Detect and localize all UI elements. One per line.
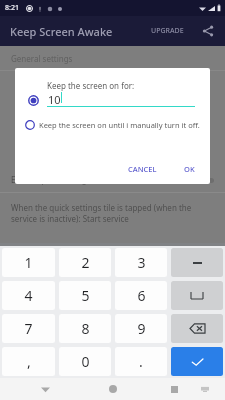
staticText: UPGRADE [151, 26, 184, 36]
button[interactable]: 2 [59, 248, 111, 277]
staticText: 6 [137, 286, 146, 305]
staticText: 5 [81, 286, 90, 305]
button[interactable]: Enter [171, 347, 223, 376]
button[interactable]: 6 [115, 281, 167, 310]
staticText: 0 [81, 352, 90, 371]
button[interactable]: 0 [59, 347, 111, 376]
staticText: When the quick settings tile is tapped (… [11, 202, 214, 224]
staticText: 2 [81, 253, 90, 272]
button[interactable]: Recents [165, 380, 183, 398]
button[interactable]: OK [177, 159, 202, 179]
staticText: Enable quick settings tile [11, 174, 196, 185]
button[interactable]: Keep screen on for duration [23, 90, 43, 110]
staticText: 4 [24, 286, 33, 305]
staticText: 10 [48, 92, 61, 107]
button[interactable]: Backspace [171, 314, 223, 343]
button[interactable]: , [2, 347, 55, 376]
button[interactable]: 5 [59, 281, 111, 310]
staticText: 8 [81, 319, 90, 338]
button[interactable]: CANCEL [121, 159, 164, 179]
button[interactable]: Dash [171, 248, 223, 277]
staticText: , [27, 352, 31, 371]
staticText: 3 [137, 253, 146, 272]
staticText: Keep Screen Awake [10, 24, 113, 39]
staticText: 8:21 [5, 3, 19, 13]
staticText: 9 [137, 319, 146, 338]
button[interactable]: Keep the screen on until i manually turn… [21, 114, 204, 136]
staticText: Keep the screen on until i manually turn… [39, 120, 200, 130]
staticText: Keep the screen on for: [47, 80, 135, 91]
button[interactable]: . [115, 347, 167, 376]
staticText: 1 [24, 253, 33, 272]
button[interactable]: Enable quick settings tile [0, 174, 225, 185]
button[interactable]: Switch keyboard [197, 381, 213, 397]
staticText: OK [184, 164, 195, 174]
button[interactable]: 9 [115, 314, 167, 343]
button[interactable]: 3 [115, 248, 167, 277]
button[interactable]: Share [197, 20, 219, 42]
staticText: . [139, 352, 143, 371]
button[interactable]: 7 [2, 314, 55, 343]
staticText: General settings [11, 53, 73, 64]
button[interactable]: Home [104, 380, 122, 398]
staticText: 7 [24, 319, 33, 338]
button[interactable]: 8 [59, 314, 111, 343]
staticText: CANCEL [128, 164, 157, 174]
button[interactable]: Back [36, 380, 54, 398]
button[interactable]: Space [171, 281, 223, 310]
button[interactable]: UPGRADE [148, 22, 187, 40]
button[interactable]: 4 [2, 281, 55, 310]
button[interactable]: 1 [2, 248, 55, 277]
